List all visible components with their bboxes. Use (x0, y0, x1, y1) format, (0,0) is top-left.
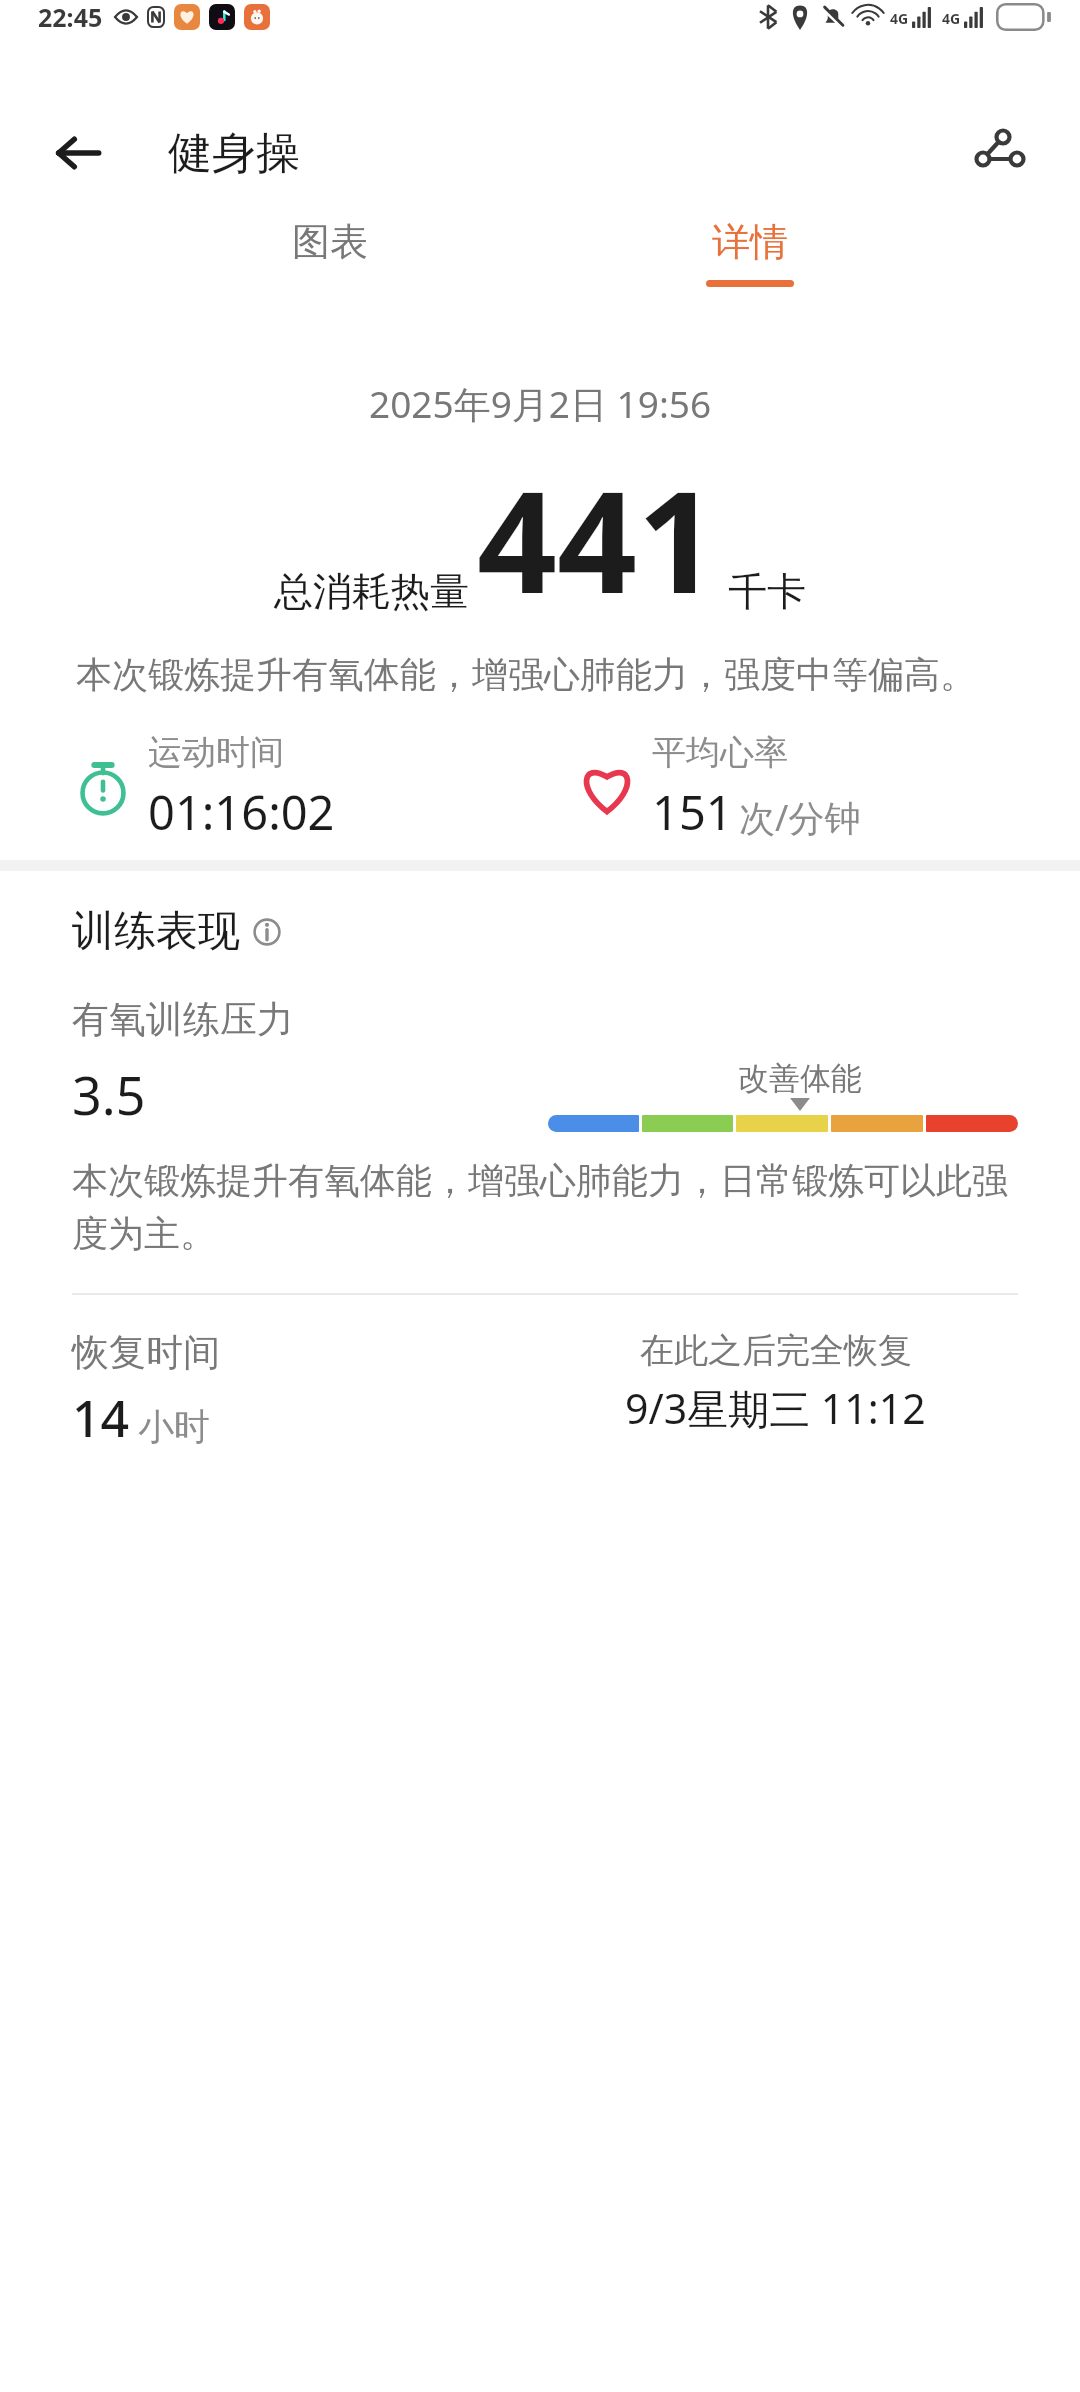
staticText: 01:16:02 (148, 780, 335, 844)
staticText: 151 (652, 780, 733, 844)
button[interactable]: Share (962, 115, 1038, 191)
button[interactable]: 训练表现 (72, 905, 282, 958)
staticText: 训练表现 (72, 905, 240, 958)
staticText: 2025年9月2日 19:56 (369, 378, 712, 429)
staticText: 在此之后完全恢复 (640, 1329, 912, 1372)
staticText: 441 (477, 443, 718, 634)
button[interactable]: Back (46, 121, 110, 185)
staticText: 小时 (138, 1404, 210, 1449)
staticText: 4G (942, 9, 961, 28)
staticText: 9/3星期三 11:12 (625, 1380, 926, 1436)
staticText: 平均心率 (652, 731, 788, 774)
staticText: 总消耗热量 (274, 567, 469, 616)
staticText: 运动时间 (148, 731, 284, 774)
staticText: 3.5 (72, 1059, 146, 1130)
button[interactable]: 详情 (670, 218, 830, 338)
staticText: 健身操 (168, 126, 300, 181)
staticText: 恢复时间 (72, 1329, 220, 1376)
staticText: 本次锻炼提升有氧体能，增强心肺能力，日常锻炼可以此强度为主。 (72, 1158, 1018, 1257)
staticText: 千卡 (728, 567, 806, 616)
staticText: 图表 (292, 218, 368, 266)
staticText: 14 (72, 1384, 130, 1452)
staticText: 本次锻炼提升有氧体能，增强心肺能力，强度中等偏高。 (76, 652, 1018, 697)
staticText: 次/分钟 (739, 793, 861, 842)
staticText: 详情 (712, 218, 788, 266)
staticText: 22:45 (38, 0, 103, 34)
staticText: 4G (890, 9, 909, 28)
staticText: 改善体能 (738, 1059, 862, 1098)
staticText: 有氧训练压力 (72, 996, 294, 1043)
button[interactable]: 图表 (250, 218, 410, 338)
